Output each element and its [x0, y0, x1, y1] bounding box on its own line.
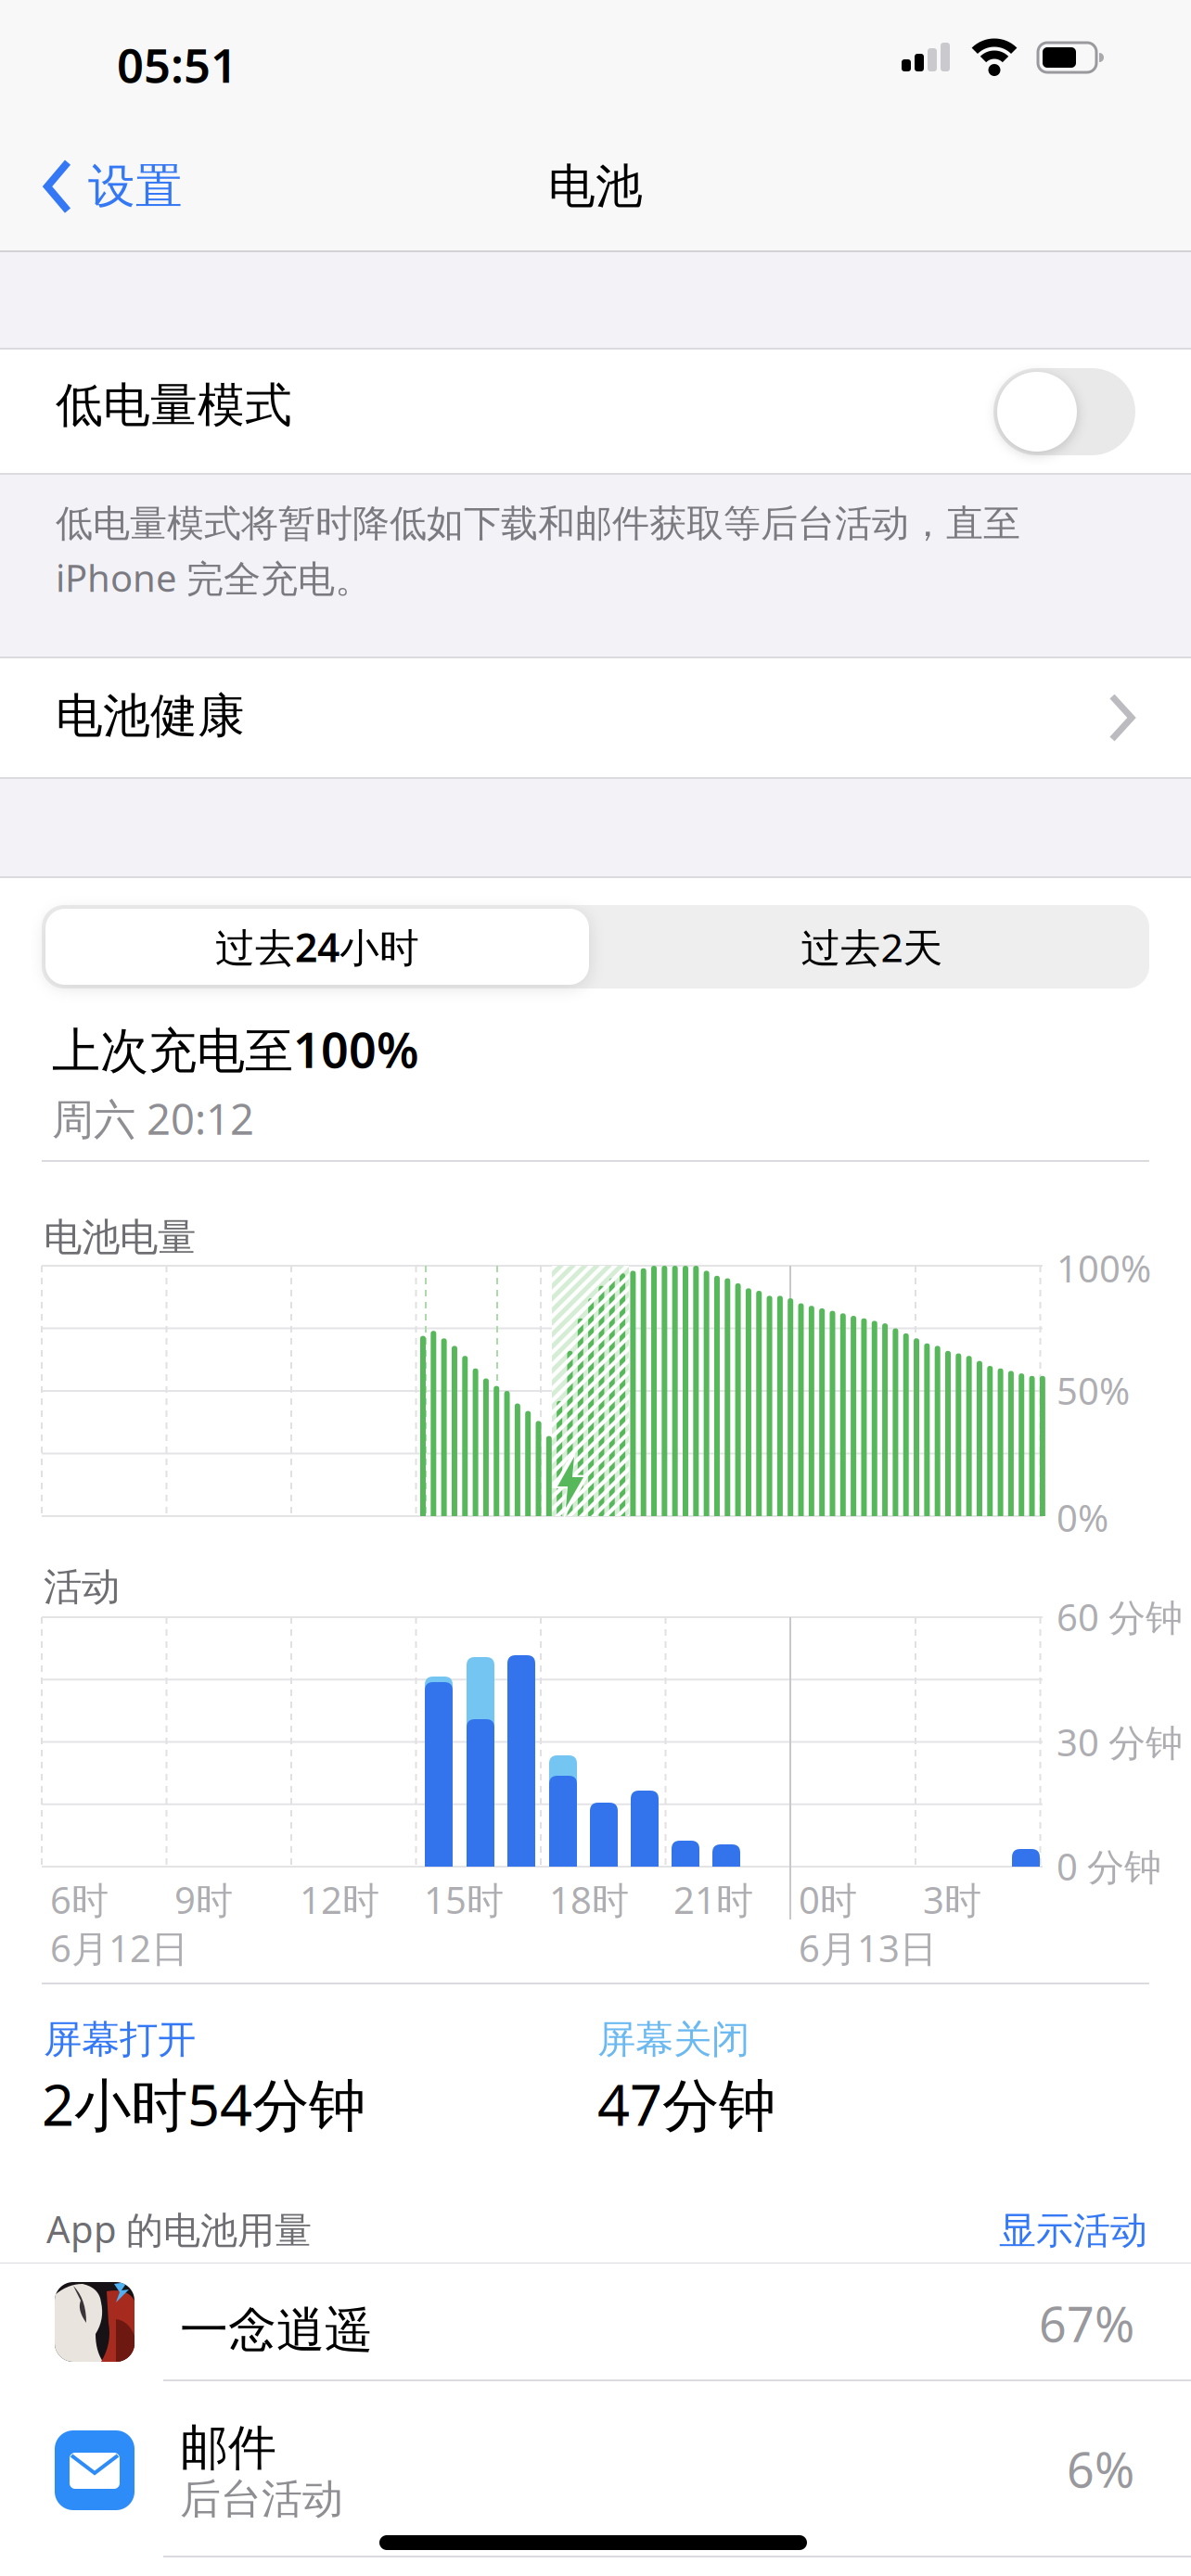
button[interactable]: 邮件	[0, 2381, 1191, 2557]
staticText: 屏幕关闭	[597, 2016, 749, 2063]
staticText: 0 分钟	[1057, 1842, 1161, 1891]
staticText: 6%	[1067, 2437, 1134, 2501]
button[interactable]: 过去24小时	[45, 909, 589, 985]
staticText: 设置	[88, 158, 183, 215]
staticText: 低电量模式将暂时降低如下载和邮件获取等后台活动，直至	[56, 501, 1020, 546]
staticText: 05:51	[117, 33, 237, 96]
staticText: 活动	[44, 1563, 120, 1611]
button[interactable]: 电池健康	[0, 658, 1191, 777]
button[interactable]: 返回设置	[44, 158, 183, 215]
staticText: 0时	[799, 1875, 857, 1924]
staticText: 60 分钟	[1057, 1592, 1183, 1641]
staticText: 6月12日	[50, 1923, 188, 1972]
staticText: 67%	[1039, 2291, 1134, 2355]
staticText: 过去2天	[801, 921, 943, 973]
staticText: 后台活动	[180, 2474, 343, 2524]
staticText: 3时	[923, 1875, 981, 1924]
button[interactable]: 显示活动	[776, 2208, 1147, 2253]
staticText: 50%	[1057, 1366, 1130, 1415]
button[interactable]: 过去2天	[598, 909, 1146, 985]
staticText: 低电量模式	[56, 376, 292, 434]
staticText: 邮件	[180, 2418, 276, 2478]
staticText: 电池健康	[56, 687, 245, 745]
staticText: 30 分钟	[1057, 1717, 1183, 1767]
staticText: 47分钟	[597, 2066, 775, 2141]
staticText: 显示活动	[999, 2208, 1147, 2253]
staticText: 100%	[1057, 1243, 1151, 1293]
staticText: 0%	[1057, 1493, 1108, 1542]
staticText: 过去24小时	[215, 921, 419, 973]
staticText: 2小时54分钟	[42, 2066, 365, 2141]
staticText: 电池电量	[44, 1214, 196, 1261]
staticText: 6月13日	[799, 1923, 937, 1972]
staticText: 屏幕打开	[44, 2016, 196, 2063]
staticText: 周六 20:12	[52, 1090, 254, 1146]
staticText: 18时	[549, 1875, 629, 1924]
staticText: 上次充电至100%	[52, 1017, 419, 1081]
staticText: iPhone 完全充电。	[56, 553, 372, 602]
staticText: 电池	[548, 158, 643, 215]
staticText: 15时	[424, 1875, 504, 1924]
staticText: 9时	[174, 1875, 233, 1924]
button[interactable]: 一念逍遥	[0, 2264, 1191, 2380]
staticText: 一念逍遥	[180, 2301, 373, 2360]
button[interactable]: 低电量模式	[0, 350, 1191, 473]
staticText: App 的电池用量	[46, 2204, 312, 2254]
staticText: 21时	[673, 1875, 753, 1924]
staticText: 6时	[50, 1875, 109, 1924]
staticText: 12时	[300, 1875, 379, 1924]
